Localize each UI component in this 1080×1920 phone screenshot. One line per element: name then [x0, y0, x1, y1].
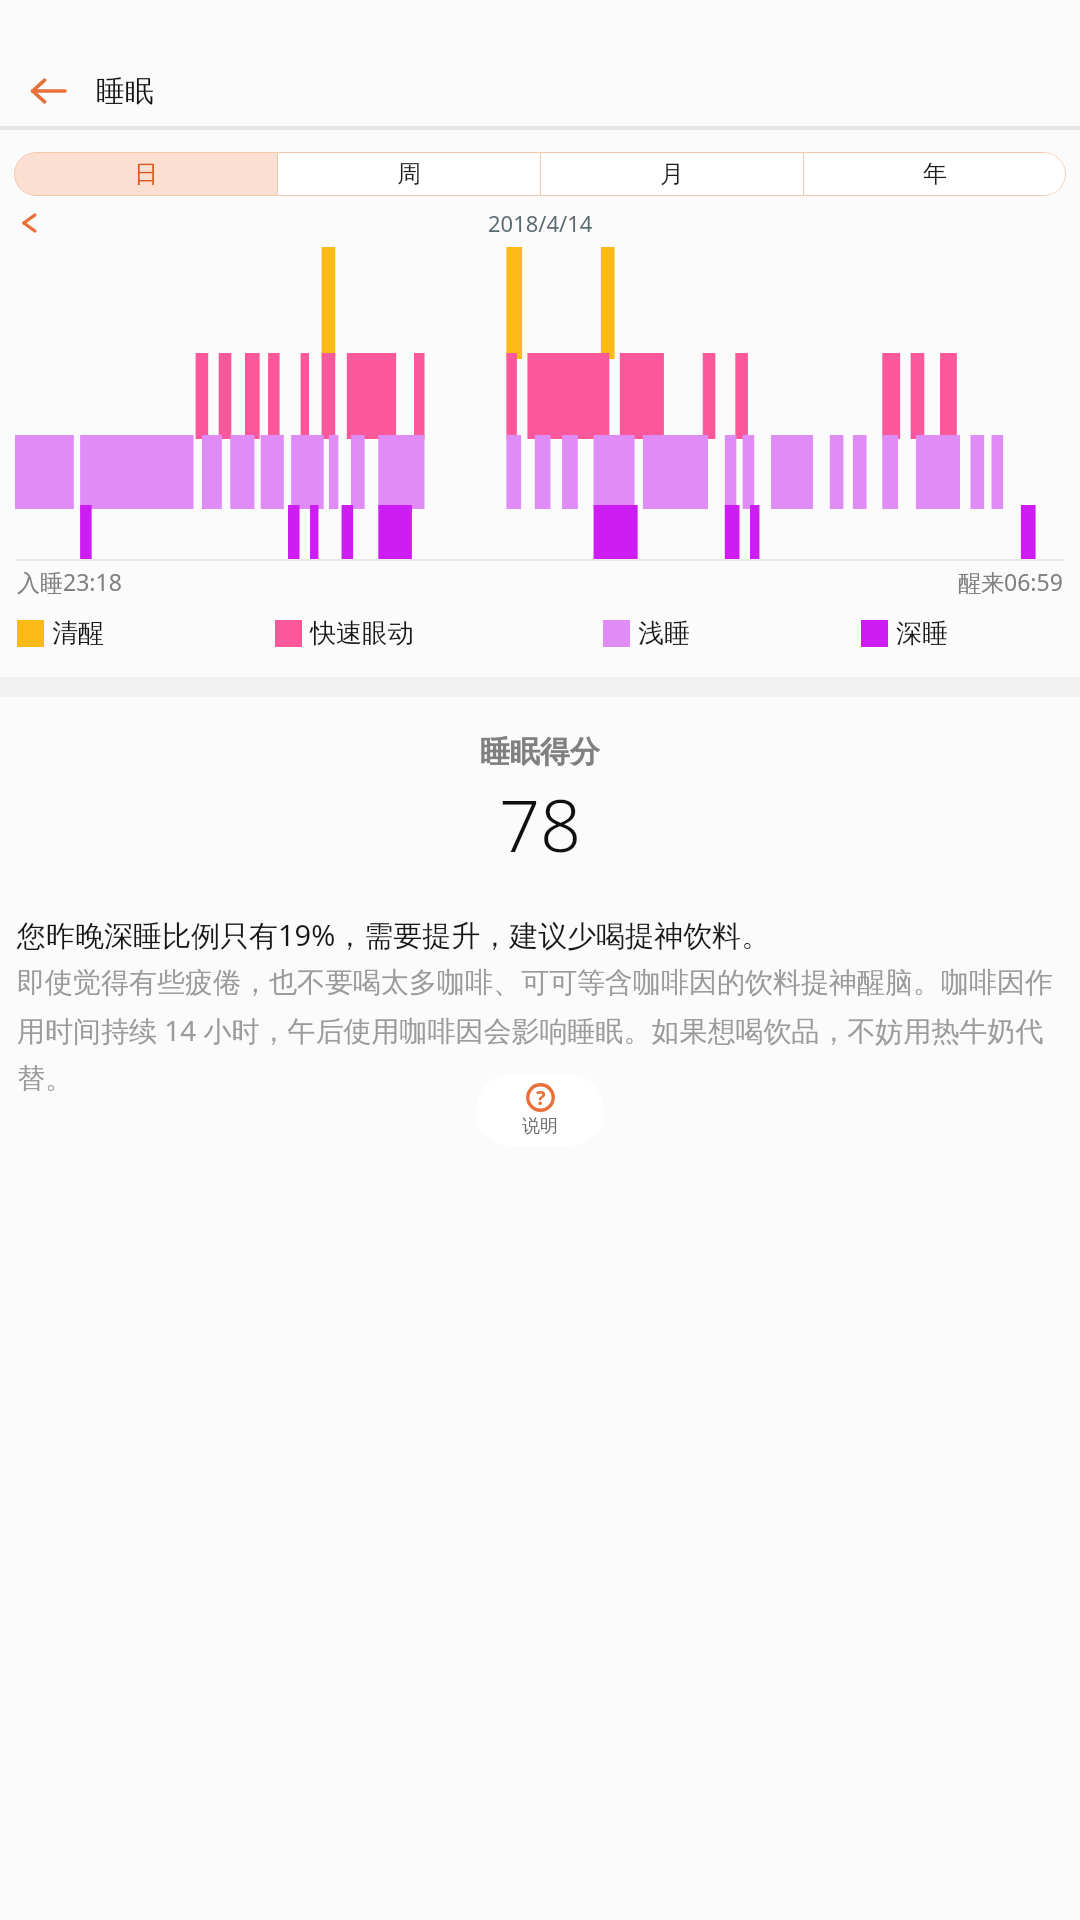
staticText: 睡眠得分 [0, 733, 1080, 771]
staticText: 日 [134, 159, 158, 189]
button[interactable]: 周 [278, 152, 540, 196]
button[interactable]: 浅睡 [603, 617, 861, 650]
staticText: 说明 [522, 1115, 558, 1138]
staticText: 快速眼动 [310, 617, 414, 650]
button[interactable]: Back [0, 56, 96, 126]
button[interactable]: Previous day [10, 205, 50, 241]
staticText: 即使觉得有些疲倦，也不要喝太多咖啡、可可等含咖啡因的饮料提神醒脑。咖啡因作用时间… [17, 965, 1063, 1096]
staticText: 年 [923, 159, 947, 189]
button[interactable]: 快速眼动 [275, 617, 603, 650]
staticText: 您昨晚深睡比例只有19%，需要提升，建议少喝提神饮料。 [17, 915, 1063, 955]
staticText: 月 [660, 159, 684, 189]
staticText: ? [536, 1084, 546, 1111]
button[interactable]: 日 [14, 152, 277, 196]
staticText: 浅睡 [638, 617, 690, 650]
button[interactable]: 清醒 [17, 617, 275, 650]
staticText: 78 [0, 775, 1080, 873]
staticText: 深睡 [896, 617, 948, 650]
staticText: 入睡23:18 [17, 566, 122, 597]
staticText: 睡眠 [96, 73, 154, 110]
staticText: 周 [397, 159, 421, 189]
staticText: 清醒 [52, 617, 104, 650]
staticText: 醒来06:59 [958, 566, 1063, 597]
button[interactable]: 月 [541, 152, 803, 196]
button[interactable]: 深睡 [861, 617, 1063, 650]
staticText: 2018/4/14 [488, 208, 593, 238]
button[interactable]: 年 [804, 152, 1066, 196]
button[interactable]: 说明 Help [476, 1074, 604, 1146]
